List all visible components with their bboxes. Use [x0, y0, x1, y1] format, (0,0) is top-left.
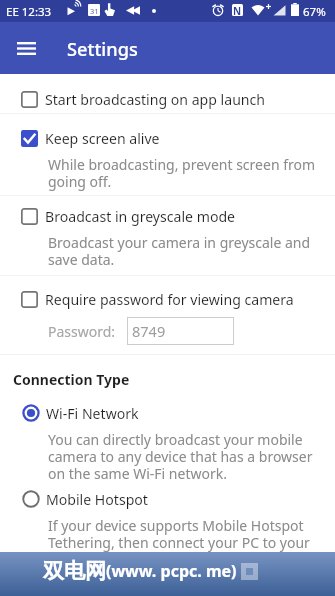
staticText: Broadcast your camera in greyscale and s…: [48, 233, 320, 269]
staticText: EE 12:33: [6, 4, 52, 20]
staticText: Connection Type: [13, 370, 130, 389]
button[interactable]: Mobile Hotspot: [0, 487, 335, 511]
staticText: Start broadcasting on app launch: [45, 90, 266, 109]
button[interactable]: Keep screen alive: [0, 124, 335, 152]
staticText: (www. pcpc. me): [106, 560, 237, 582]
staticText: Require password for viewing camera: [45, 290, 294, 309]
staticText: Mobile Hotspot: [46, 490, 148, 509]
staticText: 67%: [303, 4, 326, 20]
button[interactable]: Broadcast in greyscale mode: [0, 202, 335, 230]
staticText: Broadcast in greyscale mode: [45, 207, 236, 226]
staticText: N: [233, 4, 242, 16]
button[interactable]: Start broadcasting on app launch: [0, 85, 335, 113]
button[interactable]: Wi-Fi Network: [0, 401, 335, 425]
staticText: 31: [90, 6, 99, 16]
staticText: You can directly broadcast your mobile c…: [48, 430, 320, 483]
button[interactable]: Open navigation drawer: [2, 24, 50, 72]
staticText: Settings: [67, 37, 138, 62]
staticText: 双电网: [43, 558, 106, 584]
staticText: Password:: [48, 322, 116, 341]
button[interactable]: Require password for viewing camera: [0, 285, 335, 313]
staticText: Keep screen alive: [45, 129, 160, 148]
staticText: 8749: [132, 321, 166, 341]
button[interactable]: 8749: [127, 317, 234, 345]
staticText: If your device supports Mobile Hotspot T…: [48, 516, 320, 552]
staticText: While broadcasting, prevent screen from …: [48, 155, 320, 191]
staticText: Wi-Fi Network: [46, 404, 139, 423]
